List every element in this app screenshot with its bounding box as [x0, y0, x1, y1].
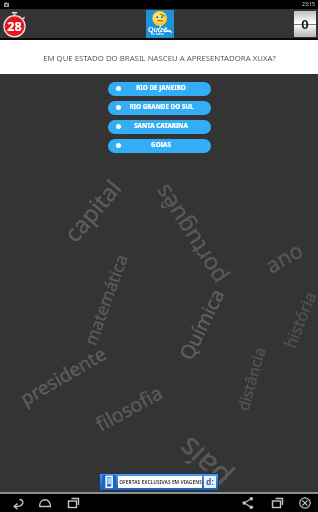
staticText: SANTA CATARINA [134, 121, 188, 130]
staticText: Química [173, 284, 230, 364]
staticText: distância [232, 344, 270, 413]
staticText: filosofia [90, 379, 167, 438]
staticText: RIO DE JANEIRO [136, 83, 186, 92]
button[interactable]: Timer [3, 11, 26, 38]
button[interactable]: GOIAS [108, 139, 211, 153]
button[interactable]: Quiz logo [146, 10, 174, 38]
staticText: Quizé [148, 24, 167, 34]
button[interactable]: Score [294, 11, 316, 37]
staticText: d: [206, 476, 214, 488]
button[interactable]: RIO GRANDE DO SUL [108, 101, 211, 115]
staticText: 23:15 [302, 1, 315, 8]
staticText: 0 [301, 15, 309, 33]
button[interactable]: Back [10, 494, 28, 512]
staticText: 28 [7, 18, 22, 35]
button[interactable]: SANTA CATARINA [108, 120, 211, 134]
staticText: história [278, 288, 318, 351]
button[interactable]: Close [296, 494, 314, 512]
staticText: GOIAS [151, 140, 171, 149]
staticText: presidente [15, 340, 111, 411]
button[interactable]: Home [36, 494, 54, 512]
button[interactable]: RIO DE JANEIRO [108, 82, 211, 96]
staticText: matemática [79, 251, 133, 348]
button[interactable]: OFERTAS EXCLUSIVAS EM VIAGENS [100, 474, 218, 490]
button[interactable]: Split screen [269, 494, 287, 512]
button[interactable]: Recents [65, 494, 83, 512]
staticText: capital [56, 172, 128, 249]
button[interactable]: Share [239, 494, 257, 512]
staticText: OFERTAS EXCLUSIVAS EM VIAGENS [119, 479, 202, 486]
staticText: EM QUE ESTADO DO BRASIL NASCEU A APRESEN… [43, 53, 276, 64]
staticText: ano [259, 235, 308, 279]
staticText: português [146, 179, 233, 291]
staticText: de bolso [151, 32, 164, 36]
staticText: país [167, 430, 238, 499]
staticText: RIO GRANDE DO SUL [129, 102, 194, 111]
